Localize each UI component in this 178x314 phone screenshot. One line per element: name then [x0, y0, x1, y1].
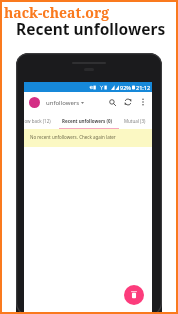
staticText: Recent unfollowers: [16, 18, 166, 39]
staticText: No recent unfollowers. Check again later: [30, 134, 116, 140]
staticText: 21:12: [136, 84, 151, 91]
staticText: Mutual (3): [124, 118, 146, 124]
staticText: Follow back (12): [24, 118, 51, 124]
button[interactable]: Follow back (12): [24, 112, 51, 129]
button[interactable]: Search: [105, 95, 119, 109]
staticText: 92%: [120, 84, 131, 91]
button[interactable]: Recent unfollowers (0): [61, 112, 114, 129]
button[interactable]: Refresh: [121, 95, 135, 109]
button[interactable]: Mutual (3): [122, 112, 148, 129]
staticText: hack-cheat.org: [4, 3, 110, 22]
button[interactable]: More options: [136, 95, 149, 108]
staticText: unfollowers: [46, 99, 80, 107]
button[interactable]: Delete: [124, 285, 144, 305]
staticText: Recent unfollowers (0): [62, 118, 113, 124]
